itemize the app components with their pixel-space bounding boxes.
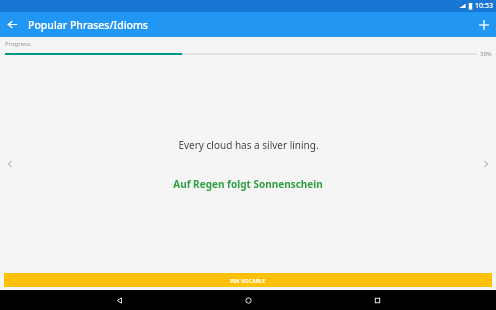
staticText: PIN VOCABLE <box>230 277 266 284</box>
button[interactable]: Back <box>109 290 129 310</box>
button[interactable]: Recents <box>367 290 387 310</box>
button[interactable]: Previous <box>0 154 20 174</box>
button[interactable]: PIN VOCABLE <box>4 273 492 287</box>
staticText: Auf Regen folgt Sonnenschein <box>173 177 323 191</box>
button[interactable]: Add <box>471 12 496 37</box>
staticText: Every cloud has a silver lining. <box>178 138 319 152</box>
staticText: 10:53 <box>475 1 493 11</box>
button[interactable]: Back <box>0 12 25 37</box>
staticText: Progress: <box>5 40 32 48</box>
staticText: 38% <box>480 50 492 58</box>
button[interactable]: Next <box>476 154 496 174</box>
button[interactable]: Home <box>238 290 258 310</box>
staticText: Popular Phrases/Idioms <box>28 18 148 32</box>
